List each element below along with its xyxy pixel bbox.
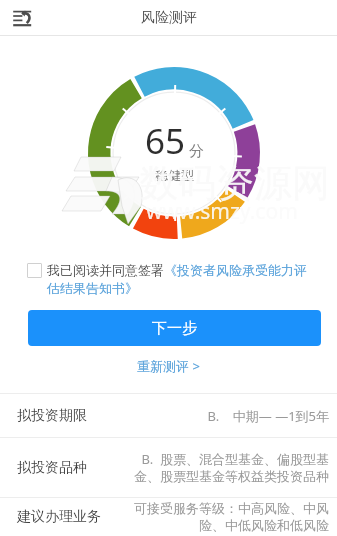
button[interactable]: 下一步	[28, 310, 321, 346]
staticText: 数码资源网	[140, 159, 330, 207]
staticText: 我已阅读并同意签署《投资者风险承受能力评估结果告知书》	[47, 262, 317, 297]
staticText: 拟投资品种	[17, 459, 87, 477]
staticText: B. 中期— —1到5年	[97, 407, 329, 425]
staticText: www.smzy.com	[146, 197, 298, 226]
button[interactable]: 拟投资期限	[17, 394, 329, 437]
staticText: 65	[145, 117, 186, 165]
button[interactable]: 拟投资品种	[17, 438, 329, 497]
staticText: 风险测评	[141, 9, 197, 27]
button[interactable]: 建议办理业务	[17, 498, 329, 536]
staticText: B. 股票、混合型基金、偏股型基 金、股票型基金等权益类投资品种	[97, 450, 329, 485]
button[interactable]: 重新测评 >	[137, 357, 200, 375]
staticText: 可接受服务等级：中高风险、中风 险、中低风险和低风险	[111, 500, 329, 534]
staticText: 分	[189, 142, 204, 161]
button[interactable]: Back to list	[12, 8, 32, 28]
staticText: 稳健型	[155, 167, 194, 183]
staticText: 拟投资期限	[17, 407, 87, 425]
button[interactable]: 我已阅读并同意签署《投资者风险承受能力评估结果告知书》	[27, 262, 317, 297]
staticText: 下一步	[152, 319, 197, 338]
staticText: 建议办理业务	[17, 508, 101, 526]
